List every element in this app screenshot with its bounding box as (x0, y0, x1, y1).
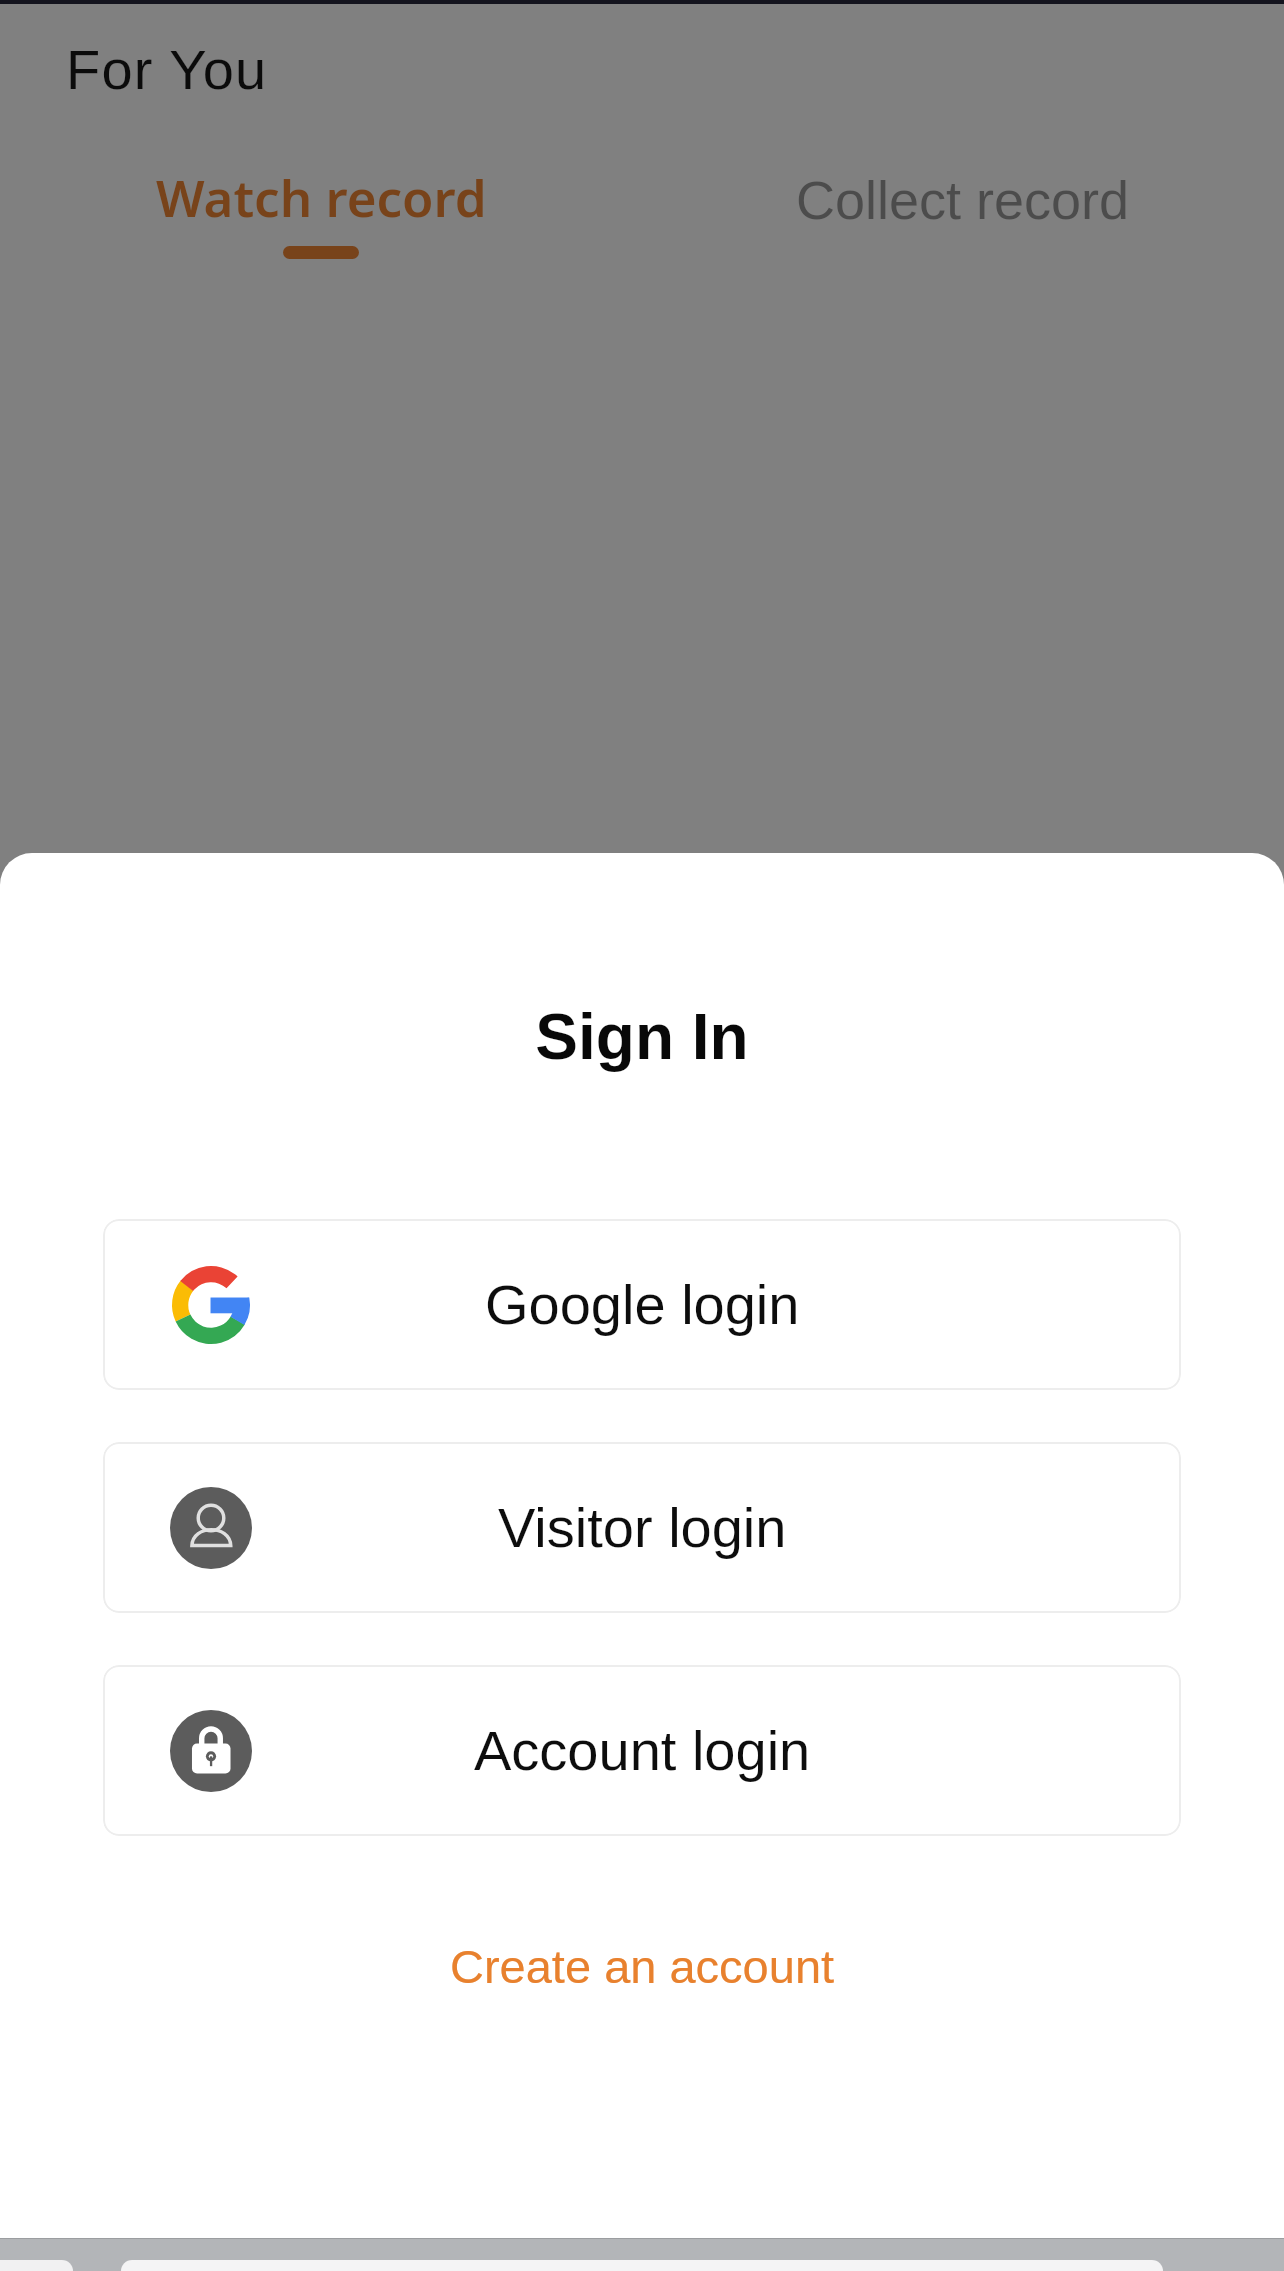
button[interactable]: Close (0, 0, 1284, 2271)
button[interactable]: Collect record (642, 114, 1284, 264)
other: Account login (170, 1710, 252, 1792)
staticText: Watch record (156, 162, 487, 231)
other: Google (172, 1266, 250, 1344)
staticText: Sign In (0, 1001, 1284, 1073)
button[interactable]: Account login (103, 1665, 1181, 1836)
staticText: For You (66, 38, 268, 101)
other: Visitor login (170, 1487, 252, 1569)
staticText: Google login (485, 1273, 800, 1336)
staticText: Create an account (450, 1940, 835, 1993)
button[interactable]: Create an account (426, 1926, 859, 2007)
button[interactable]: Watch record (0, 114, 642, 264)
staticText: Visitor login (498, 1496, 787, 1559)
staticText: Collect record (796, 170, 1130, 230)
staticText: Account login (474, 1719, 811, 1782)
button[interactable]: Visitor login (103, 1442, 1181, 1613)
button[interactable]: Google (103, 1219, 1181, 1390)
